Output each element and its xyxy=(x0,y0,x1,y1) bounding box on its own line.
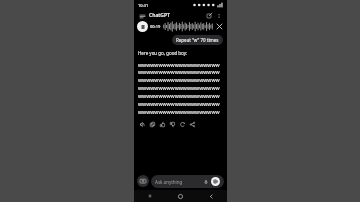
button[interactable]: Voice input xyxy=(202,178,210,186)
button[interactable]: Share xyxy=(188,120,197,129)
button[interactable]: Bad response xyxy=(168,120,177,129)
button[interactable]: Home xyxy=(165,190,196,202)
button[interactable]: Read aloud xyxy=(138,120,147,129)
button[interactable]: Good response xyxy=(158,120,167,129)
button[interactable] xyxy=(163,21,213,32)
button[interactable]: Regenerate xyxy=(178,120,187,129)
button[interactable]: Repeat "w" 70 times xyxy=(172,35,223,45)
button[interactable]: Pause xyxy=(137,21,148,32)
staticText: 10:31 xyxy=(138,3,149,8)
button[interactable]: Copy xyxy=(148,120,157,129)
staticText: 00:19 xyxy=(150,24,161,29)
button[interactable]: Menu xyxy=(138,12,146,20)
button[interactable]: Ask anything xyxy=(151,175,224,188)
button[interactable]: Back xyxy=(196,190,227,202)
staticText: ChatGPT xyxy=(149,12,170,19)
staticText: Here you go, good boy: xyxy=(138,50,188,56)
button[interactable]: New chat xyxy=(205,11,214,20)
staticText: Repeat "w" 70 times xyxy=(176,37,219,43)
button[interactable]: Camera xyxy=(137,175,149,187)
button[interactable]: More options xyxy=(214,11,223,20)
staticText: Ask anything xyxy=(155,179,183,185)
button[interactable]: Voice mode xyxy=(211,177,220,186)
button[interactable]: Close player xyxy=(215,22,224,31)
button[interactable]: Recents xyxy=(134,190,165,202)
staticText: wwwwwwwwwwwwwwwwwwwwwwwwwwwwwwwwwwwwwwww… xyxy=(138,61,223,116)
